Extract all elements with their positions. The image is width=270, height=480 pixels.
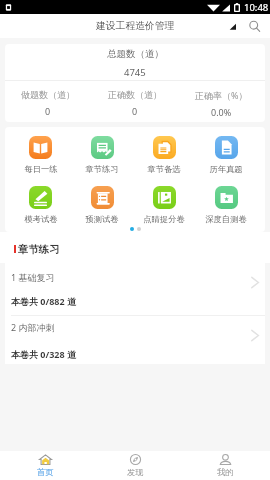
button[interactable]: 章节备选 [133,136,195,174]
button[interactable]: 预测试卷 [71,186,133,224]
staticText: 发现 [127,467,144,477]
staticText: 每日一练 [24,164,58,174]
button[interactable]: 首页 [0,451,90,480]
staticText: 本卷共 0/328 道 [11,348,77,360]
button[interactable]: 模考试卷 [10,186,71,224]
button[interactable]: Search [242,14,266,38]
staticText: 章节练习 [18,243,60,256]
staticText: 章节练习 [85,164,119,174]
staticText: 深度自测卷 [205,214,247,224]
staticText: 正确率（%） [195,89,248,101]
staticText: 2 内部冲刺 [11,321,249,333]
button[interactable]: 发现 [90,451,180,480]
staticText: 0 [132,105,138,117]
button[interactable]: 1 基础复习 [5,263,265,315]
button[interactable]: 深度自测卷 [195,186,257,224]
button[interactable]: 2 内部冲刺 [5,316,265,364]
button[interactable]: 正确率（%） [178,84,265,122]
staticText: 本卷共 0/882 道 [11,295,77,307]
button[interactable]: 点睛提分卷 [133,186,195,224]
button[interactable]: 正确数（道） [91,84,178,122]
button[interactable]: 每日一练 [10,136,71,174]
staticText: 0.0% [211,106,232,118]
staticText: 点睛提分卷 [143,214,185,224]
staticText: 正确数（道） [108,89,162,100]
staticText: 首页 [37,467,54,477]
staticText: 1 基础复习 [11,271,249,283]
staticText: 建设工程造价管理 [96,20,175,32]
staticText: 模考试卷 [24,214,58,224]
staticText: 章节备选 [147,164,181,174]
staticText: 预测试卷 [85,214,119,224]
button[interactable]: 我的 [180,451,270,480]
staticText: 做题数（道） [21,89,75,100]
staticText: 我的 [217,467,234,477]
button[interactable]: Expand [222,16,242,36]
staticText: 0 [45,105,51,117]
staticText: 历年真题 [209,164,243,174]
staticText: 总题数（道） [107,48,164,60]
staticText: 10:48 [244,1,269,14]
button[interactable]: 做题数（道） [5,84,91,122]
staticText: 4745 [124,66,146,79]
button[interactable]: 历年真题 [195,136,257,174]
button[interactable]: 章节练习 [71,136,133,174]
